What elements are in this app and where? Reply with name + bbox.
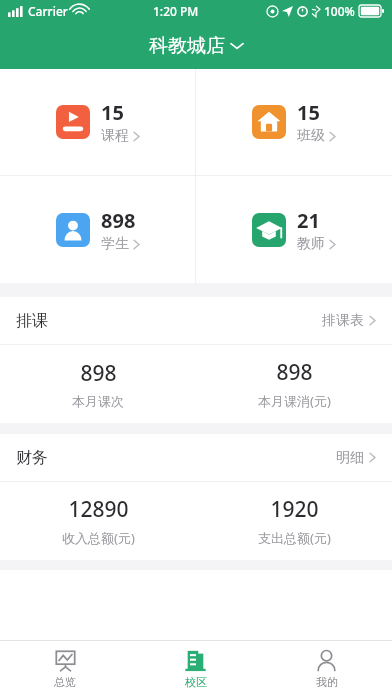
staticText: 21: [297, 207, 320, 234]
other: 总览: [54, 649, 77, 672]
staticText: 班级: [297, 127, 325, 145]
button[interactable]: 12890: [0, 482, 196, 560]
button[interactable]: 15: [0, 69, 195, 175]
staticText: 898: [276, 358, 313, 387]
staticText: 12890: [68, 495, 129, 524]
staticText: 科教城店: [149, 34, 225, 58]
other: 我的: [315, 649, 338, 672]
staticText: 支出总额(元): [258, 529, 331, 547]
staticText: 收入总额(元): [62, 529, 135, 547]
staticText: 我的: [316, 675, 338, 689]
staticText: 1920: [270, 495, 319, 524]
button[interactable]: 898: [0, 176, 195, 283]
staticText: 100%: [324, 3, 355, 19]
button[interactable]: 898: [0, 345, 196, 423]
staticText: 898: [101, 207, 136, 234]
button[interactable]: 排课: [0, 297, 392, 344]
other: 校区: [184, 649, 207, 672]
staticText: 1:20 PM: [153, 3, 199, 19]
staticText: 排课: [16, 311, 48, 331]
button[interactable]: 财务: [0, 434, 392, 481]
button[interactable]: 校区: [130, 641, 261, 696]
staticText: 学生: [101, 235, 129, 253]
staticText: 898: [80, 359, 117, 388]
staticText: 本月课次: [72, 393, 124, 409]
button[interactable]: 15: [196, 69, 392, 175]
button[interactable]: 21: [196, 176, 392, 283]
button[interactable]: 我的: [261, 641, 392, 696]
staticText: 明细: [336, 449, 364, 467]
staticText: 校区: [185, 675, 207, 689]
button[interactable]: 科教城店: [137, 30, 255, 62]
staticText: 教师: [297, 235, 325, 253]
staticText: 本月课消(元): [258, 392, 331, 410]
staticText: 15: [297, 99, 320, 126]
staticText: 财务: [16, 448, 48, 468]
staticText: 总览: [54, 675, 76, 689]
staticText: 15: [101, 99, 124, 126]
button[interactable]: 898: [196, 345, 392, 423]
staticText: Carrier: [28, 3, 68, 19]
staticText: 排课表: [322, 312, 364, 330]
staticText: 课程: [101, 127, 129, 145]
button[interactable]: 总览: [0, 641, 130, 696]
button[interactable]: 1920: [196, 482, 392, 560]
